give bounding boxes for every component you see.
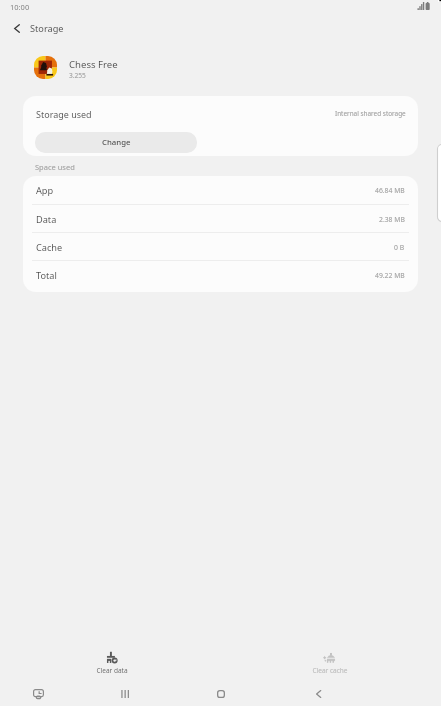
staticText: Clear cache [312, 666, 348, 675]
button[interactable]: Data [23, 205, 418, 233]
staticText: Total [36, 269, 57, 282]
staticText: 46.84 MB [375, 186, 405, 195]
button[interactable]: Clear cache [295, 645, 365, 681]
button[interactable]: App [23, 176, 418, 205]
button[interactable]: Total [23, 261, 418, 290]
button[interactable]: Change [35, 132, 197, 153]
staticText: Cache [36, 241, 63, 254]
button[interactable]: Home [205, 682, 237, 706]
staticText: Storage used [36, 108, 92, 120]
staticText: Clear data [96, 666, 128, 675]
staticText: 3.255 [69, 71, 86, 80]
staticText: Change [102, 137, 131, 148]
button[interactable]: Recent apps [109, 682, 141, 706]
button[interactable]: Chess Free [0, 47, 441, 89]
staticText: 10:00 [10, 2, 30, 12]
staticText: App [36, 184, 54, 197]
staticText: Internal shared storage [335, 109, 406, 118]
staticText: Storage [30, 22, 64, 35]
staticText: Space used [35, 162, 75, 172]
staticText: 2.38 MB [379, 215, 405, 224]
button[interactable]: Back [302, 682, 334, 706]
button[interactable]: Screen time [22, 682, 54, 706]
staticText: Data [36, 213, 57, 226]
button[interactable]: Back [3, 14, 31, 42]
staticText: 49.22 MB [375, 271, 405, 280]
staticText: Chess Free [69, 58, 118, 71]
button[interactable]: Cache [23, 233, 418, 261]
button[interactable]: Clear data [77, 645, 147, 681]
staticText: 0 B [394, 243, 405, 252]
